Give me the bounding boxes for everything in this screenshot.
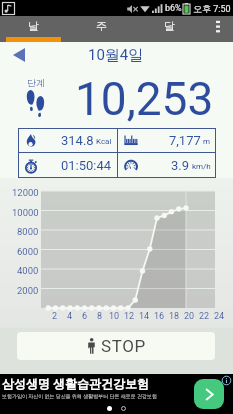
- staticText: 10: [109, 311, 120, 322]
- button[interactable]: 주: [67, 16, 135, 42]
- staticText: 10,253: [75, 72, 214, 126]
- staticText: 20: [184, 311, 195, 322]
- staticText: b6%: [165, 3, 182, 14]
- button[interactable]: STOP: [17, 332, 215, 360]
- staticText: 4000: [17, 265, 39, 276]
- staticText: STOP: [101, 336, 146, 356]
- staticText: 주: [96, 19, 107, 33]
- staticText: km/h: [192, 162, 211, 171]
- staticText: 삼성생명 생활습관건강보험: [2, 376, 149, 391]
- staticText: 18: [169, 311, 180, 322]
- button[interactable]: More options: [203, 16, 233, 42]
- button[interactable]: 3.9: [118, 153, 216, 178]
- staticText: 6000: [17, 246, 39, 257]
- staticText: 12: [124, 311, 135, 322]
- staticText: 4: [67, 311, 73, 322]
- staticText: 오후 7:50: [193, 3, 231, 14]
- button[interactable]: 7,177: [118, 128, 216, 152]
- staticText: 날: [28, 19, 39, 33]
- staticText: 3.9: [171, 158, 190, 173]
- button[interactable]: Open advertisement: [194, 379, 224, 409]
- staticText: 22: [199, 311, 210, 322]
- staticText: 12000: [12, 187, 39, 198]
- staticText: 6: [82, 311, 88, 322]
- staticText: Kcal: [96, 137, 112, 146]
- staticText: 16: [154, 311, 165, 322]
- staticText: 달: [164, 19, 175, 33]
- staticText: 314.8: [61, 133, 94, 148]
- staticText: 단계: [27, 77, 45, 88]
- button[interactable]: 314.8: [18, 128, 117, 152]
- staticText: 8: [97, 311, 103, 322]
- button[interactable]: 달: [135, 16, 203, 42]
- staticText: 7,177: [169, 133, 201, 148]
- staticText: m: [203, 137, 211, 146]
- staticText: 14: [139, 311, 150, 322]
- staticText: 10000: [12, 207, 39, 218]
- button[interactable]: 01:50:44: [18, 153, 117, 178]
- other: Ad info: [222, 376, 231, 385]
- button[interactable]: Previous day: [7, 43, 31, 67]
- staticText: 10월4일: [88, 46, 144, 65]
- staticText: 2: [52, 311, 58, 322]
- staticText: 2000: [17, 285, 39, 296]
- button[interactable]: 날: [0, 16, 67, 42]
- staticText: 24: [214, 311, 225, 322]
- staticText: 8000: [17, 226, 39, 237]
- staticText: 01:50:44: [61, 158, 112, 173]
- staticText: 보험가입이 자신이 없는 당신을 위해 생활병부터 단돈 새로운 건강보험: [2, 393, 157, 399]
